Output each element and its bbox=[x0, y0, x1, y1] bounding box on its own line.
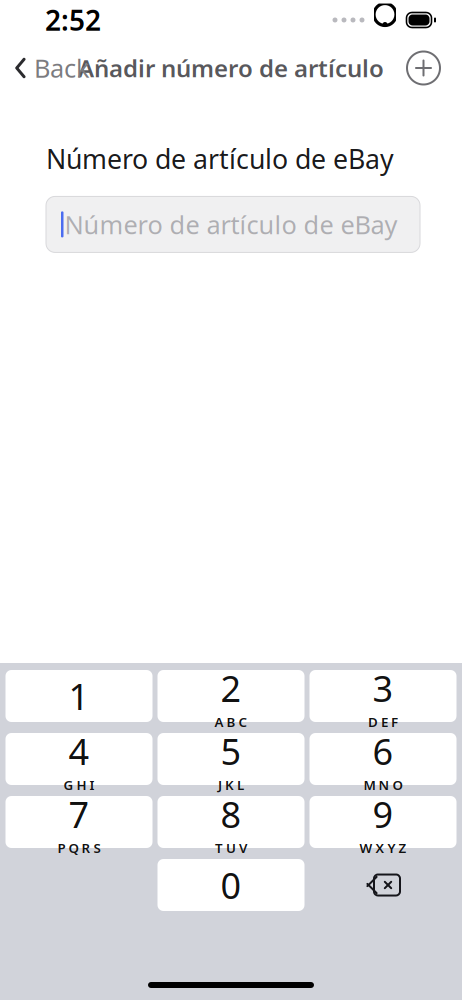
staticText: 8 bbox=[220, 790, 241, 838]
staticText: Número de artículo de eBay bbox=[64, 208, 397, 241]
button[interactable]: 1 bbox=[5, 670, 152, 722]
staticText: W X Y Z bbox=[359, 839, 406, 857]
staticText: G H I bbox=[63, 776, 94, 794]
button[interactable]: Número de artículo de eBay bbox=[46, 196, 420, 252]
staticText: J K L bbox=[218, 776, 244, 794]
staticText: 1 bbox=[68, 672, 89, 720]
button[interactable]: 6 bbox=[309, 733, 456, 785]
button[interactable]: Delete bbox=[309, 859, 456, 911]
staticText: 4 bbox=[68, 727, 89, 775]
staticText: 7 bbox=[68, 790, 89, 838]
button[interactable]: 5 bbox=[157, 733, 304, 785]
button[interactable]: 8 bbox=[157, 796, 304, 848]
staticText: 5 bbox=[220, 727, 241, 775]
staticText: 9 bbox=[372, 790, 393, 838]
button[interactable]: 2 bbox=[157, 670, 304, 722]
staticText: P Q R S bbox=[57, 839, 100, 857]
staticText: 6 bbox=[372, 727, 393, 775]
staticText: 2 bbox=[220, 664, 241, 712]
staticText: D E F bbox=[368, 713, 398, 731]
staticText: 2:52 bbox=[45, 1, 101, 39]
staticText: A B C bbox=[214, 713, 247, 731]
staticText: Número de artículo de eBay bbox=[46, 141, 394, 176]
staticText: 3 bbox=[372, 664, 393, 712]
button[interactable]: 4 bbox=[5, 733, 152, 785]
staticText: 0 bbox=[220, 861, 241, 909]
button[interactable]: 7 bbox=[5, 796, 152, 848]
button[interactable]: 0 bbox=[157, 859, 304, 911]
staticText: T U V bbox=[215, 839, 247, 857]
button[interactable]: Add bbox=[399, 43, 448, 92]
button[interactable]: 9 bbox=[309, 796, 456, 848]
staticText: Back bbox=[34, 51, 90, 85]
button[interactable]: Back bbox=[2, 43, 102, 93]
staticText: M N O bbox=[363, 776, 402, 794]
button[interactable]: 3 bbox=[309, 670, 456, 722]
staticText: Añadir número de artículo bbox=[78, 52, 384, 84]
